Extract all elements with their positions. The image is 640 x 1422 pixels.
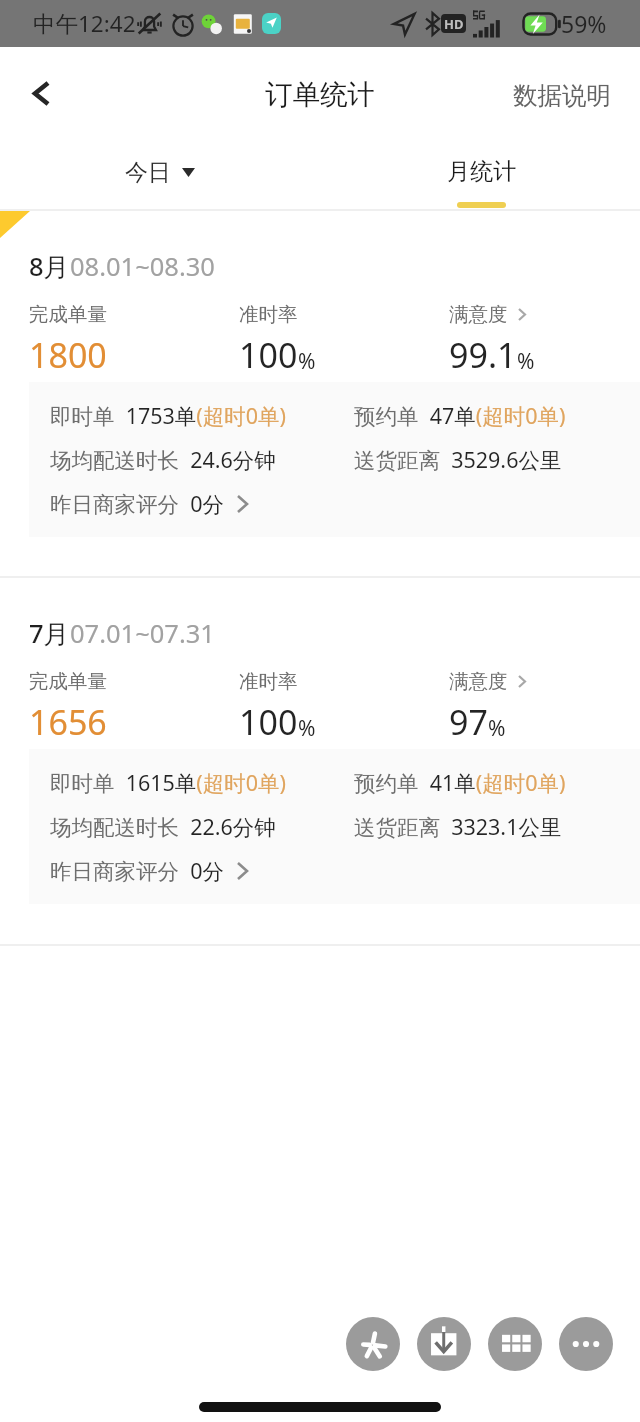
staticText: 预约单 47单(超时0单) — [354, 401, 566, 430]
staticText: 场均配送时长 24.6分钟 — [50, 445, 276, 474]
staticText: 1800 — [29, 332, 107, 378]
staticText: 昨日商家评分 0分 — [50, 489, 224, 518]
staticText: 即时单 1615单(超时0单) — [50, 768, 287, 797]
staticText: 今日 — [125, 158, 171, 187]
staticText: 订单统计 — [265, 78, 375, 113]
staticText: 59% — [561, 8, 607, 39]
staticText: 数据说明 — [513, 80, 611, 111]
staticText: 送货距离 3529.6公里 — [354, 445, 562, 474]
staticText: % — [517, 347, 535, 376]
staticText: % — [298, 714, 316, 743]
staticText: 即时单 1753单(超时0单) — [50, 401, 287, 430]
button[interactable]: Screen record — [346, 1317, 400, 1371]
staticText: 月统计 — [447, 157, 516, 186]
button[interactable]: 今日 — [117, 150, 203, 195]
staticText: % — [488, 714, 506, 743]
staticText: 07.01~07.31 — [70, 616, 215, 651]
staticText: 97 — [449, 699, 488, 745]
staticText: 送货距离 3323.1公里 — [354, 812, 562, 841]
staticText: % — [298, 347, 316, 376]
button[interactable]: 数据说明 — [484, 58, 640, 133]
staticText: 满意度 — [449, 669, 508, 694]
staticText: 准时率 — [239, 669, 298, 694]
button[interactable]: Apps — [488, 1317, 542, 1371]
staticText: 08.01~08.30 — [70, 249, 215, 284]
staticText: 准时率 — [239, 302, 298, 327]
staticText: 100 — [239, 699, 298, 745]
staticText: 满意度 — [449, 302, 508, 327]
button[interactable]: Back — [0, 53, 84, 137]
staticText: 预约单 41单(超时0单) — [354, 768, 566, 797]
button[interactable]: 昨日商家评分 0分 — [50, 489, 247, 518]
staticText: 完成单量 — [29, 302, 107, 327]
staticText: 7月 — [29, 616, 70, 651]
staticText: 中午12:42 — [33, 8, 136, 39]
staticText: HD — [444, 15, 464, 33]
staticText: 场均配送时长 22.6分钟 — [50, 812, 276, 841]
staticText: 100 — [239, 332, 298, 378]
staticText: 1656 — [29, 699, 107, 745]
staticText: 完成单量 — [29, 669, 107, 694]
staticText: 99.1 — [449, 332, 517, 378]
staticText: 8月 — [29, 249, 70, 284]
button[interactable]: Save — [417, 1317, 471, 1371]
button[interactable]: More — [559, 1317, 613, 1371]
button[interactable]: 月统计 — [431, 143, 532, 206]
button[interactable]: 昨日商家评分 0分 — [50, 856, 247, 885]
staticText: 昨日商家评分 0分 — [50, 856, 224, 885]
